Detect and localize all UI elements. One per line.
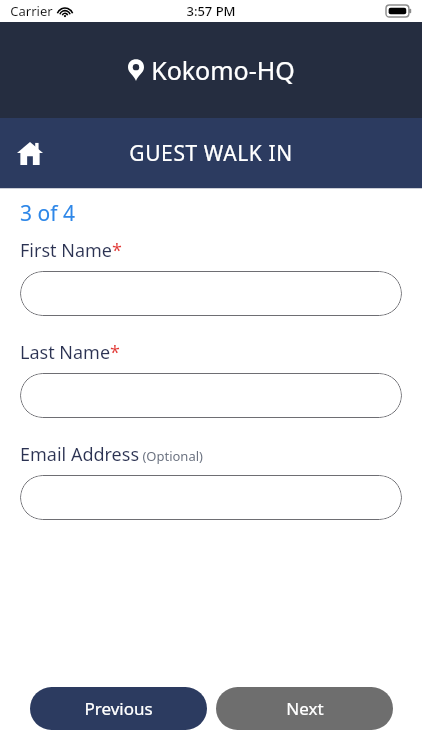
button[interactable]: Text input field	[20, 373, 402, 418]
button[interactable]: Home	[8, 131, 52, 175]
staticText: Carrier	[10, 2, 53, 20]
staticText: Next	[286, 697, 324, 720]
staticText: Kokomo-HQ	[151, 53, 295, 87]
staticText: 3 of 4	[20, 199, 75, 228]
staticText: First Name*	[20, 238, 122, 263]
staticText: 3:57 PM	[186, 2, 236, 20]
button[interactable]: Text input field	[20, 271, 402, 316]
button[interactable]: Previous	[30, 687, 207, 730]
staticText: GUEST WALK IN	[129, 139, 293, 168]
button[interactable]: Next	[216, 687, 393, 730]
button[interactable]: Text input field	[20, 475, 402, 520]
staticText: Email Address (Optional)	[20, 442, 203, 467]
staticText: Last Name*	[20, 340, 121, 365]
staticText: Previous	[84, 697, 153, 720]
